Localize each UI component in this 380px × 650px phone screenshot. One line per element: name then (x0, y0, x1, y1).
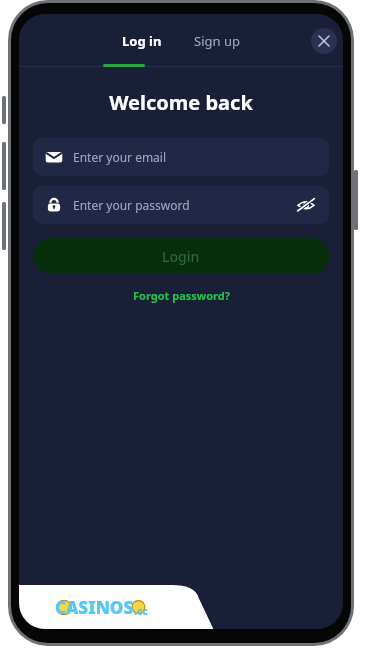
button[interactable]: Login (33, 238, 329, 274)
button[interactable]: Forgot password? (129, 284, 234, 307)
staticText: Enter your password (73, 197, 190, 213)
staticText: Sign up (194, 32, 240, 50)
staticText: .cc (134, 604, 148, 618)
button[interactable]: Log in (114, 26, 170, 56)
button[interactable]: Enter your password (33, 186, 329, 224)
button[interactable]: Sign up (186, 26, 248, 56)
button[interactable]: Enter your email (33, 138, 329, 176)
button[interactable]: Close (311, 28, 337, 54)
staticText: Welcome back (19, 89, 343, 116)
button[interactable]: Show password (295, 194, 317, 216)
staticText: Forgot password? (133, 288, 230, 303)
staticText: Log in (122, 32, 162, 50)
staticText: CASINOS (55, 596, 134, 618)
staticText: Enter your email (73, 149, 167, 165)
staticText: Login (162, 247, 200, 266)
